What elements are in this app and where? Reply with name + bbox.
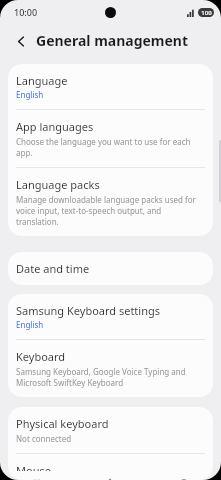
- button[interactable]: Language packs: [8, 168, 213, 236]
- button[interactable]: Physical keyboard: [8, 407, 213, 453]
- staticText: Language packs: [16, 177, 100, 192]
- button[interactable]: Date and time: [8, 252, 213, 285]
- staticText: Language: [16, 73, 68, 88]
- staticText: Choose the language you want to use for …: [16, 136, 203, 158]
- staticText: Mouse: [16, 463, 51, 471]
- staticText: English: [16, 319, 44, 330]
- staticText: Samsung Keyboard settings: [16, 303, 161, 318]
- staticText: 10:00: [14, 6, 38, 18]
- staticText: English: [16, 89, 44, 100]
- staticText: 100: [201, 9, 212, 17]
- staticText: Manage downloadable language packs used …: [16, 194, 203, 227]
- staticText: General management: [36, 31, 189, 50]
- button[interactable]: Samsung Keyboard settings: [8, 294, 213, 339]
- staticText: Keyboard: [16, 349, 66, 364]
- button[interactable]: Keyboard: [8, 340, 213, 397]
- staticText: Date and time: [16, 261, 90, 276]
- staticText: App languages: [16, 119, 94, 134]
- staticText: Samsung Keyboard, Google Voice Typing an…: [16, 366, 203, 388]
- button[interactable]: Back: [10, 30, 32, 52]
- button[interactable]: Language: [8, 64, 213, 109]
- button[interactable]: Mouse: [8, 454, 213, 480]
- staticText: Physical keyboard: [16, 416, 109, 431]
- button[interactable]: App languages: [8, 110, 213, 167]
- staticText: Not connected: [16, 433, 72, 444]
